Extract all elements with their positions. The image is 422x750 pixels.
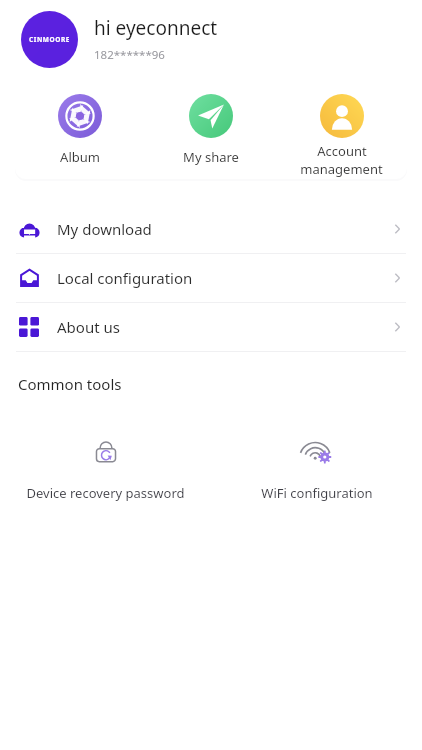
staticText: Album: [60, 148, 100, 166]
button[interactable]: My share: [145, 81, 276, 166]
staticText: CINMOORE: [29, 35, 71, 44]
button[interactable]: Local configuration: [0, 254, 422, 302]
button[interactable]: Album: [15, 81, 145, 166]
staticText: Common tools: [18, 374, 122, 394]
staticText: Device recovery password: [26, 484, 185, 502]
staticText: About us: [57, 317, 120, 337]
button[interactable]: My download: [0, 205, 422, 253]
button[interactable]: About us: [0, 303, 422, 351]
button[interactable]: WiFi configuration: [211, 434, 422, 502]
staticText: hi eyeconnect: [94, 15, 218, 41]
staticText: Account: [317, 142, 367, 160]
staticText: 182******96: [94, 47, 165, 63]
staticText: WiFi configuration: [261, 484, 373, 502]
staticText: My share: [183, 148, 239, 166]
button[interactable]: Device recovery password: [0, 434, 211, 502]
staticText: My download: [57, 219, 152, 239]
staticText: management: [300, 160, 383, 178]
staticText: Local configuration: [57, 268, 193, 288]
button[interactable]: Account: [276, 81, 407, 178]
button[interactable]: Profile avatar: [21, 11, 78, 68]
